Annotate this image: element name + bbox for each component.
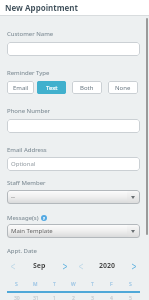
staticText: Phone Number — [7, 107, 51, 115]
button[interactable] — [63, 264, 67, 269]
staticText: T — [53, 281, 56, 288]
button[interactable]: Text — [37, 81, 66, 94]
staticText: Email Address — [7, 146, 47, 154]
staticText: W — [71, 281, 76, 288]
button[interactable] — [132, 264, 136, 269]
button[interactable] — [11, 264, 15, 269]
staticText: Main Template — [11, 227, 53, 235]
staticText: 3 — [91, 295, 94, 300]
staticText: Text — [46, 84, 58, 92]
button[interactable]: Both — [72, 81, 102, 94]
staticText: Both — [80, 84, 94, 92]
staticText: -- — [11, 193, 15, 201]
button[interactable] — [79, 264, 83, 269]
button[interactable]: -- — [7, 190, 140, 204]
staticText: Optional — [11, 160, 36, 168]
staticText: 4 — [110, 295, 113, 300]
button[interactable] — [7, 42, 140, 56]
staticText: 1 — [53, 295, 56, 300]
staticText: T — [91, 281, 94, 288]
staticText: None — [115, 84, 131, 92]
staticText: M — [33, 281, 38, 288]
button[interactable]: Optional — [7, 157, 140, 171]
button[interactable]: Email — [7, 81, 34, 94]
staticText: Sep — [33, 261, 46, 271]
staticText: Reminder Type — [7, 69, 50, 77]
staticText: Message(s) — [7, 214, 39, 222]
staticText: 30 — [14, 295, 20, 300]
staticText: 31 — [33, 295, 39, 300]
staticText: 2020 — [99, 261, 116, 271]
staticText: New Appointment — [5, 2, 79, 13]
staticText: S — [15, 281, 18, 288]
button[interactable] — [7, 119, 140, 133]
staticText: S — [129, 281, 132, 288]
button[interactable]: Main Template — [7, 224, 140, 238]
staticText: Email — [13, 84, 29, 92]
staticText: Customer Name — [7, 30, 54, 38]
staticText: 5 — [129, 295, 132, 300]
staticText: 2 — [72, 295, 75, 300]
staticText: Appt. Date — [7, 247, 37, 255]
button[interactable]: None — [108, 81, 138, 94]
staticText: F — [110, 281, 113, 288]
staticText: Staff Member — [7, 179, 46, 187]
staticText: ? — [43, 216, 45, 221]
